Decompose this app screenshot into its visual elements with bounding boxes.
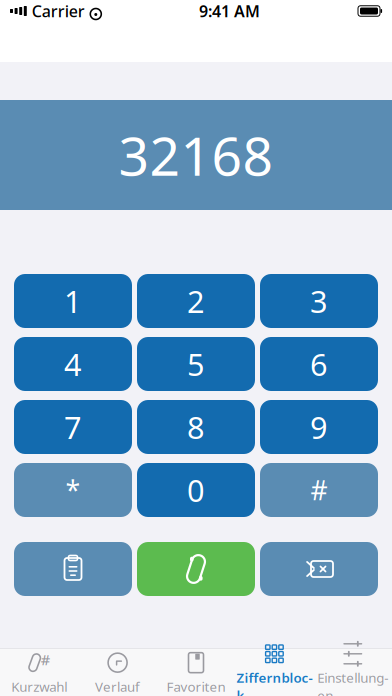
staticText: Ziffernblock [236, 669, 312, 696]
staticText: # [310, 472, 327, 508]
staticText: # [41, 650, 50, 669]
button[interactable]: 4 [14, 337, 132, 391]
staticText: 3 [310, 281, 328, 321]
button[interactable]: Paste [14, 542, 132, 596]
staticText: 32168 [118, 120, 273, 190]
staticText: 9:41 AM [199, 0, 260, 22]
staticText: 8 [187, 407, 205, 447]
button[interactable]: 9 [260, 400, 378, 454]
staticText: 1 [64, 281, 82, 321]
button[interactable]: Verlauf [78, 646, 157, 696]
staticText: Verlauf [95, 678, 140, 695]
button[interactable]: Delete [260, 542, 378, 596]
staticText: Kurzwahl [11, 678, 67, 695]
staticText: 9 [310, 407, 328, 447]
button[interactable]: 6 [260, 337, 378, 391]
button[interactable]: 8 [137, 400, 255, 454]
button[interactable]: 7 [14, 400, 132, 454]
staticText: Einstellungen [317, 669, 388, 696]
staticText: 0 [187, 470, 205, 510]
staticText: 5 [187, 344, 205, 384]
staticText: 6 [310, 344, 328, 384]
button[interactable]: Einstellungen [314, 637, 392, 696]
staticText: 4 [64, 344, 82, 384]
button[interactable]: Favoriten [157, 646, 235, 696]
button[interactable]: Call [137, 542, 255, 596]
button[interactable]: # [0, 646, 78, 696]
button[interactable]: 2 [137, 274, 255, 328]
button[interactable]: Ziffernblock [235, 637, 314, 696]
staticText: Favoriten [166, 678, 225, 695]
button[interactable]: 3 [260, 274, 378, 328]
button[interactable]: 5 [137, 337, 255, 391]
staticText: * [65, 472, 80, 508]
button[interactable]: 1 [14, 274, 132, 328]
staticText: 7 [64, 407, 82, 447]
button[interactable]: # [260, 463, 378, 517]
button[interactable]: 0 [137, 463, 255, 517]
button[interactable]: * [14, 463, 132, 517]
staticText: Carrier [32, 0, 85, 22]
staticText: 2 [187, 281, 205, 321]
